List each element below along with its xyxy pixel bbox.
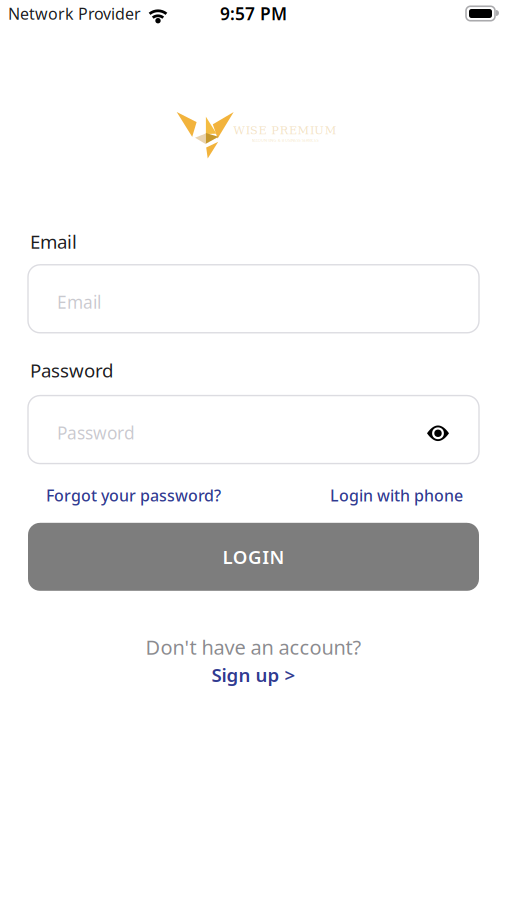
staticText: ACCOUNTING & BUSINESS SERVICES [252,138,318,143]
staticText: Email [57,290,101,313]
button[interactable]: Password [28,396,479,464]
staticText: Forgot your password? [46,485,221,506]
button[interactable]: Sign up > [211,662,295,687]
button[interactable]: Email [28,265,479,333]
staticText: Password [57,421,135,444]
staticText: Network Provider [8,3,141,24]
staticText: Login with phone [330,485,463,506]
staticText: LOGIN [223,544,284,569]
staticText: 9:57 PM [220,2,287,25]
staticText: Password [30,358,113,383]
button[interactable]: Login with phone [330,485,463,506]
staticText: Don't have an account? [145,634,361,660]
button[interactable]: Forgot your password? [46,485,221,506]
staticText: Sign up > [211,662,295,687]
staticText: WISE PREMIUM [233,124,337,137]
button[interactable]: LOGIN [28,523,479,591]
button[interactable] [426,419,450,441]
staticText: Email [30,229,77,254]
